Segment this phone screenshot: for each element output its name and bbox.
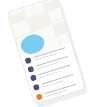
button[interactable] — [21, 42, 73, 66]
button[interactable] — [26, 60, 79, 84]
button[interactable] — [24, 51, 76, 75]
button[interactable] — [29, 69, 82, 94]
button[interactable] — [32, 79, 85, 104]
